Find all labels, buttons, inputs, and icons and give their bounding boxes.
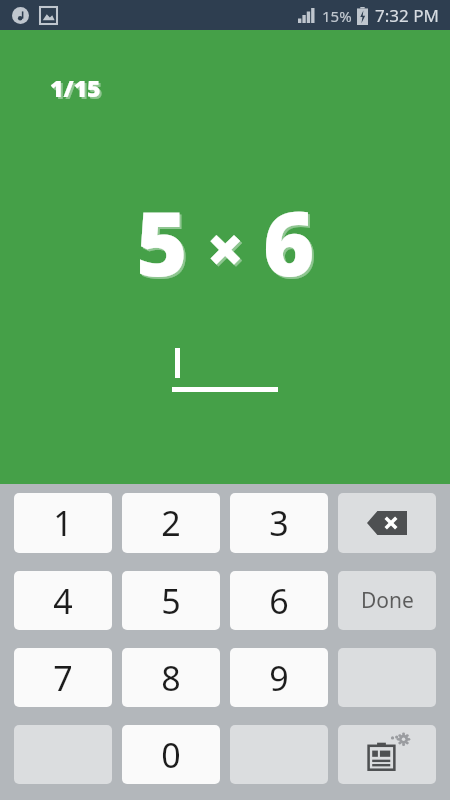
- button[interactable]: Clipboard and settings: [338, 725, 436, 784]
- staticText: 5: [136, 182, 188, 302]
- staticText: Done: [361, 586, 414, 615]
- staticText: 5: [161, 578, 181, 624]
- staticText: 9: [269, 655, 289, 701]
- staticText: 1: [53, 500, 73, 546]
- button[interactable]: 9: [230, 648, 328, 707]
- button[interactable]: 0: [122, 725, 220, 784]
- button[interactable]: 3: [230, 493, 328, 553]
- staticText: 15%: [322, 6, 352, 26]
- button[interactable]: Done: [338, 571, 436, 630]
- staticText: 1/15: [52, 74, 103, 105]
- button[interactable]: 7: [14, 648, 112, 707]
- staticText: 6: [263, 182, 315, 302]
- staticText: ×: [206, 202, 245, 292]
- button[interactable]: 6: [230, 571, 328, 630]
- staticText: 0: [161, 732, 181, 778]
- staticText: 7:32 PM: [375, 4, 439, 27]
- staticText: 2: [161, 500, 181, 546]
- button[interactable]: 8: [122, 648, 220, 707]
- staticText: 1/15: [50, 72, 101, 103]
- staticText: 6: [265, 184, 317, 304]
- button[interactable]: Answer input: [172, 348, 278, 392]
- staticText: 6: [269, 578, 289, 624]
- button[interactable]: 4: [14, 571, 112, 630]
- staticText: ×: [208, 204, 247, 294]
- button[interactable]: 5: [122, 571, 220, 630]
- staticText: 3: [269, 500, 289, 546]
- button[interactable]: Backspace: [338, 493, 436, 553]
- staticText: 7: [53, 655, 73, 701]
- staticText: 4: [53, 578, 73, 624]
- button[interactable]: 2: [122, 493, 220, 553]
- staticText: 8: [161, 655, 181, 701]
- staticText: 5: [138, 184, 190, 304]
- button[interactable]: 1: [14, 493, 112, 553]
